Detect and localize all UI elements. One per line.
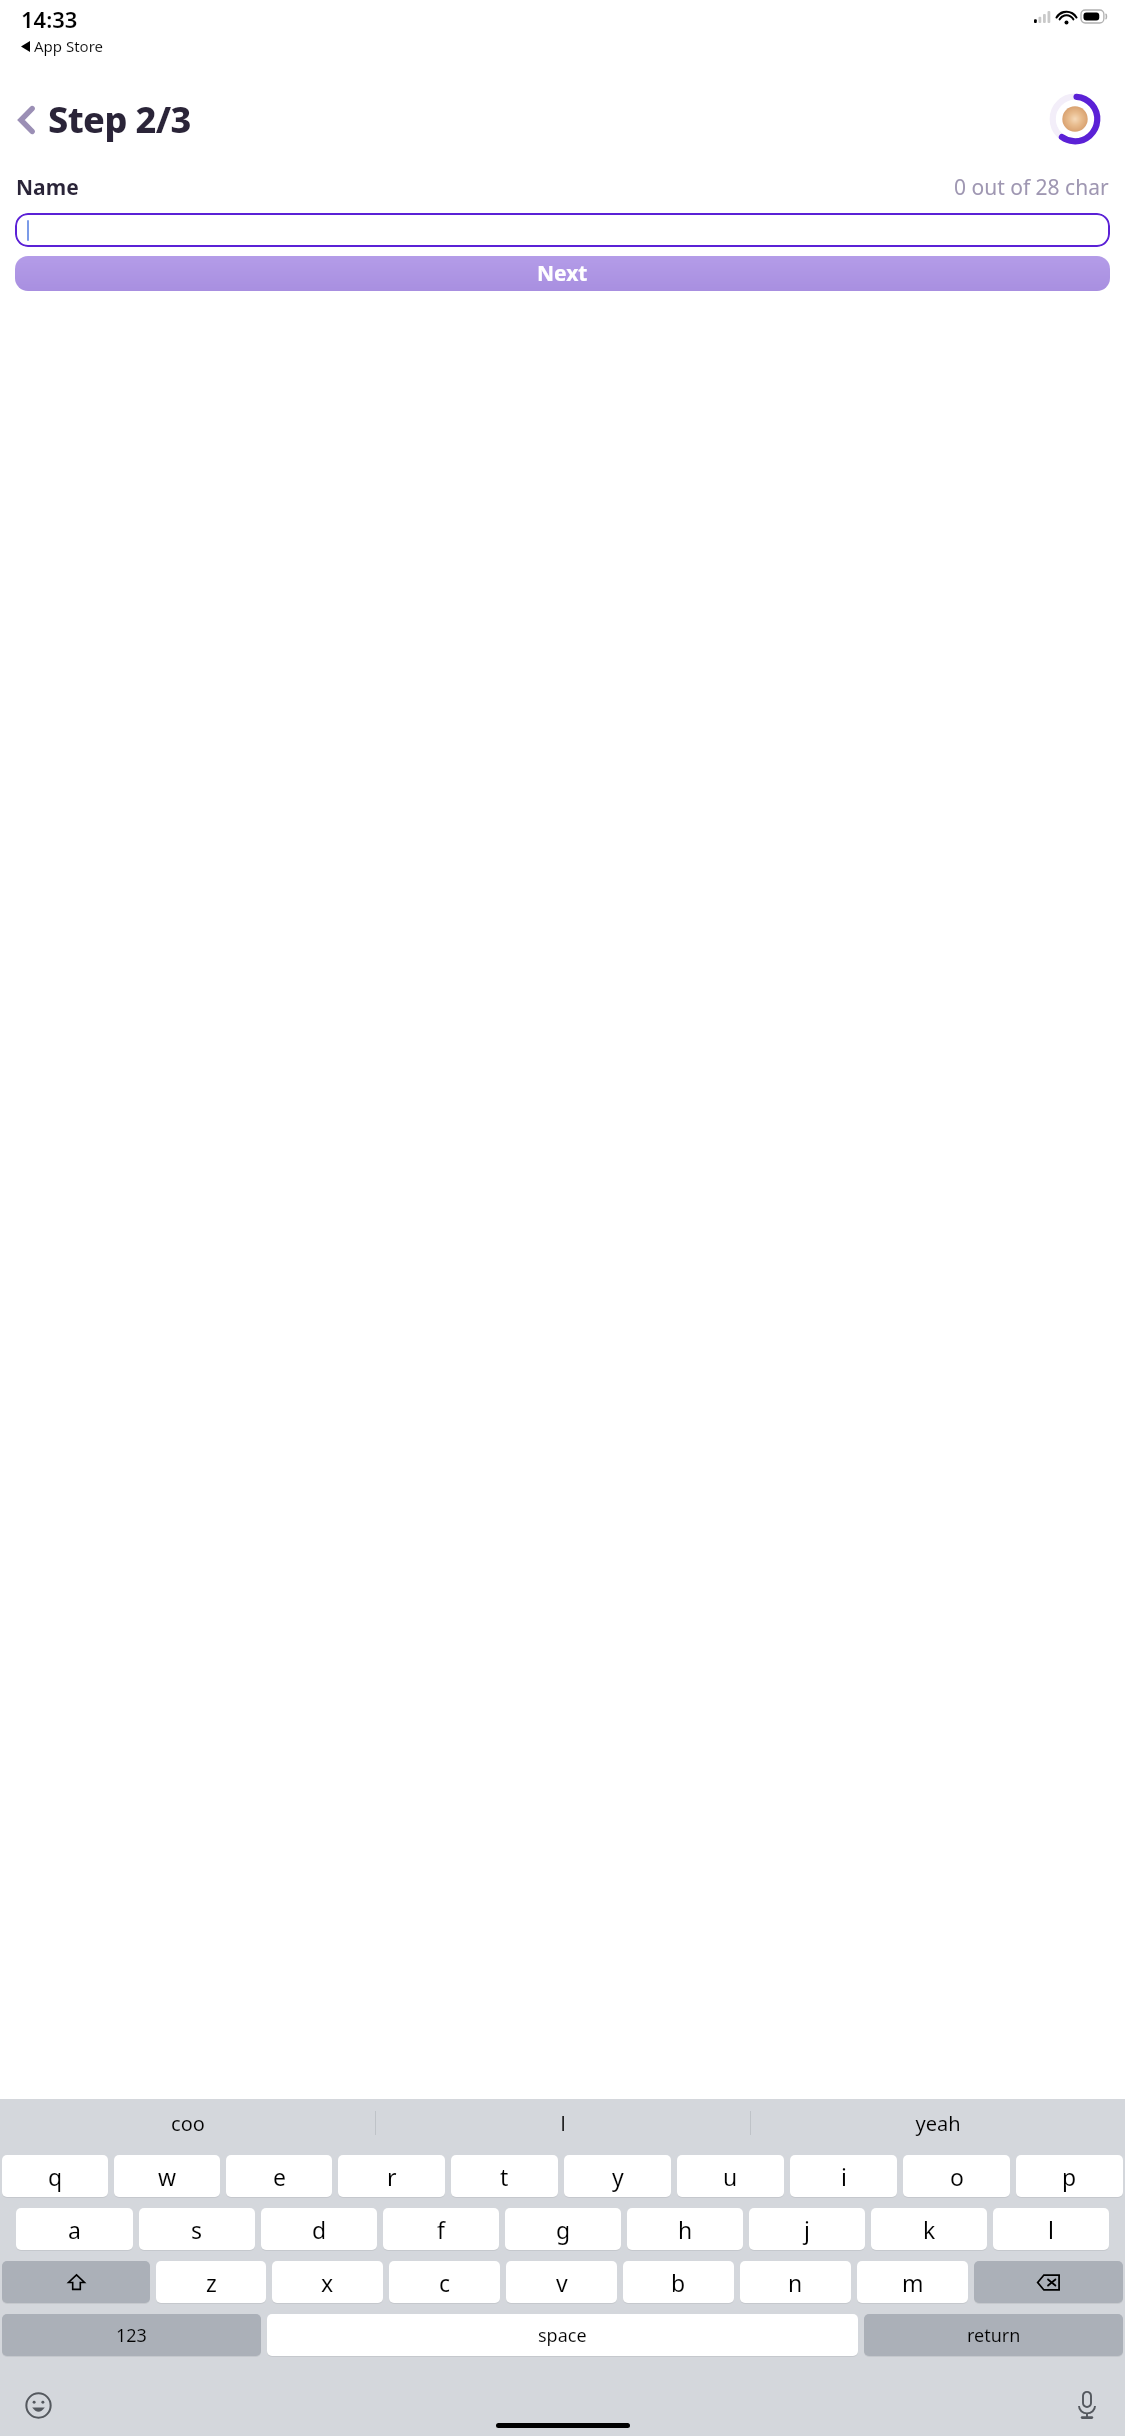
button[interactable]: o	[903, 2155, 1010, 2197]
staticText: i	[841, 2161, 847, 2192]
button[interactable]: q	[2, 2155, 108, 2197]
button[interactable]	[2, 2261, 150, 2303]
button[interactable]: r	[338, 2155, 445, 2197]
staticText: w	[158, 2161, 177, 2192]
staticText: return	[967, 2323, 1021, 2348]
staticText: h	[678, 2214, 693, 2245]
button[interactable]: l	[993, 2208, 1109, 2250]
button[interactable]: a	[16, 2208, 133, 2250]
button[interactable]: p	[1016, 2155, 1123, 2197]
button[interactable]: m	[857, 2261, 968, 2303]
button[interactable]: Back	[10, 95, 191, 144]
staticText: t	[500, 2161, 509, 2192]
button[interactable]: k	[871, 2208, 987, 2250]
staticText: g	[556, 2214, 571, 2245]
staticText: c	[439, 2267, 451, 2298]
button[interactable]: v	[506, 2261, 617, 2303]
button[interactable]: w	[114, 2155, 220, 2197]
staticText: Name	[16, 173, 79, 202]
button[interactable]: x	[272, 2261, 383, 2303]
staticText: o	[950, 2161, 964, 2192]
button[interactable]: b	[623, 2261, 734, 2303]
button[interactable]: d	[261, 2208, 377, 2250]
staticText: d	[312, 2214, 327, 2245]
button[interactable]: s	[139, 2208, 255, 2250]
staticText: m	[902, 2267, 924, 2298]
button[interactable]: Emoji	[16, 2383, 60, 2427]
button[interactable]: f	[383, 2208, 499, 2250]
button[interactable]: u	[677, 2155, 784, 2197]
button[interactable]: i	[790, 2155, 897, 2197]
button[interactable]: 123	[2, 2314, 261, 2356]
button[interactable]: return	[864, 2314, 1123, 2356]
staticText: b	[671, 2267, 686, 2298]
button[interactable]	[974, 2261, 1123, 2303]
staticText: 14:33	[21, 4, 78, 34]
staticText: j	[804, 2214, 810, 2245]
staticText: u	[723, 2161, 738, 2192]
button[interactable]: yeah	[750, 2099, 1125, 2147]
staticText: 0 out of 28 char	[954, 173, 1109, 202]
staticText: Step 2/3	[48, 95, 191, 144]
button[interactable]: j	[749, 2208, 865, 2250]
staticText: s	[191, 2214, 203, 2245]
staticText: e	[273, 2161, 286, 2192]
button[interactable]: Next	[15, 256, 1110, 291]
staticText: 123	[116, 2323, 147, 2348]
button[interactable]: z	[156, 2261, 266, 2303]
staticText: z	[206, 2267, 217, 2298]
button[interactable]: n	[740, 2261, 851, 2303]
button[interactable]: h	[627, 2208, 743, 2250]
staticText: v	[556, 2267, 568, 2298]
button[interactable]: y	[564, 2155, 671, 2197]
button[interactable]: Dictation	[1065, 2383, 1109, 2427]
staticText: k	[923, 2214, 936, 2245]
button[interactable]: coo	[0, 2099, 375, 2147]
staticText: l	[560, 2110, 566, 2137]
staticText: n	[788, 2267, 803, 2298]
staticText: l	[1048, 2214, 1054, 2245]
other: Shift	[2, 2261, 150, 2303]
button[interactable]: Profile	[1048, 92, 1102, 146]
staticText: q	[48, 2161, 63, 2192]
staticText: Next	[537, 259, 588, 288]
button[interactable]: space	[267, 2314, 858, 2356]
other: Back	[10, 103, 44, 137]
button[interactable]: l	[375, 2099, 750, 2147]
staticText: f	[437, 2214, 445, 2245]
staticText: coo	[171, 2110, 205, 2137]
staticText: x	[321, 2267, 334, 2298]
button[interactable]: e	[226, 2155, 332, 2197]
staticText: r	[387, 2161, 397, 2192]
staticText: space	[538, 2323, 587, 2348]
button[interactable]: g	[505, 2208, 621, 2250]
staticText: App Store	[34, 36, 104, 56]
button[interactable]: t	[451, 2155, 558, 2197]
staticText: y	[612, 2161, 624, 2192]
staticText: a	[68, 2214, 81, 2245]
button[interactable]: c	[389, 2261, 500, 2303]
other: Backspace	[974, 2261, 1123, 2303]
staticText: yeah	[915, 2110, 961, 2137]
staticText: p	[1062, 2161, 1077, 2192]
button[interactable]	[15, 213, 1110, 247]
